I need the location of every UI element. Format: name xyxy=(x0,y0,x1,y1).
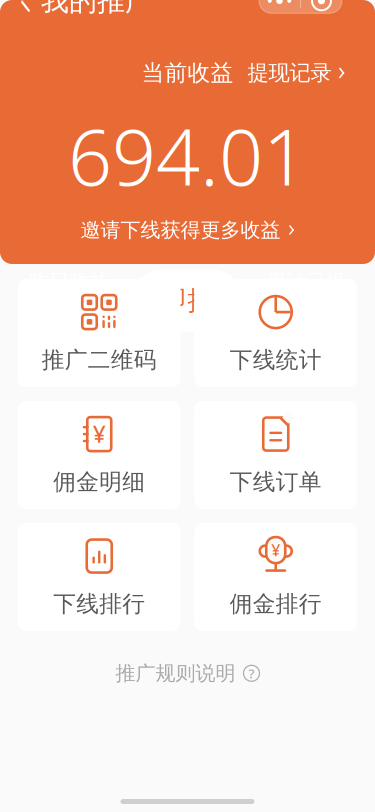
button[interactable]: 下线排行 xyxy=(18,523,180,631)
staticText: 157元 xyxy=(40,304,97,332)
staticText: 下线订单 xyxy=(230,468,322,496)
staticText: 625元 xyxy=(277,304,334,332)
staticText: ¥ xyxy=(93,419,106,449)
staticText: 推广二维码 xyxy=(42,346,157,374)
button[interactable]: ¥ xyxy=(194,523,357,631)
staticText: 昨日收益 xyxy=(29,269,109,294)
button[interactable]: 提现记录 xyxy=(247,54,375,92)
staticText: 下线统计 xyxy=(230,346,322,374)
staticText: ? xyxy=(248,664,254,682)
staticText: 当前收益 xyxy=(141,59,233,87)
staticText: ¥ xyxy=(271,539,280,561)
staticText: 立即提现 xyxy=(133,284,241,317)
button[interactable]: 下线订单 xyxy=(194,401,357,509)
staticText: 邀请下线获得更多收益 xyxy=(80,218,280,242)
button[interactable]: 我的推广 xyxy=(0,0,153,26)
button[interactable]: 推广二维码 xyxy=(18,279,180,387)
staticText: 694.01 xyxy=(68,104,307,207)
button[interactable]: 下线统计 xyxy=(194,279,357,387)
staticText: 我的推广 xyxy=(41,0,153,18)
button[interactable]: 邀请下线获得更多收益 xyxy=(80,213,295,247)
staticText: 下线排行 xyxy=(53,590,145,618)
button[interactable]: 推广规则说明 xyxy=(103,653,271,694)
staticText: 佣金排行 xyxy=(230,590,322,618)
button[interactable]: 立即提现 xyxy=(131,270,243,332)
button[interactable]: Close xyxy=(301,0,342,13)
button[interactable]: More xyxy=(259,0,300,13)
button[interactable]: ¥ xyxy=(18,401,180,509)
staticText: 推广规则说明 xyxy=(115,661,235,686)
staticText: 提现记录 xyxy=(247,60,331,86)
staticText: 佣金明细 xyxy=(53,468,145,496)
